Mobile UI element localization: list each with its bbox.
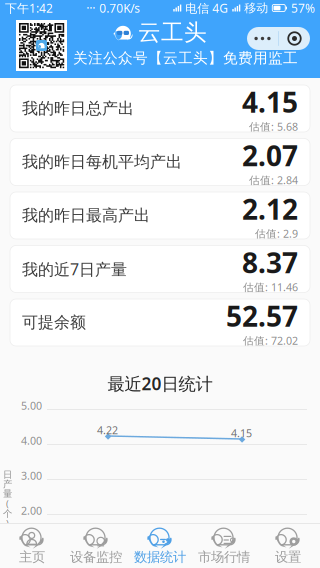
staticText: 3.00 — [21, 468, 42, 483]
staticText: 我的近7日产量 — [22, 258, 127, 280]
staticText: 可提余额 — [22, 313, 86, 332]
staticText: 数据统计 — [134, 549, 186, 565]
staticText: 4.15 — [231, 426, 252, 440]
staticText: 2.07 — [242, 137, 298, 174]
staticText: 设备监控 — [70, 549, 122, 565]
staticText: 移动 — [244, 1, 268, 15]
staticText: 估值: 5.68 — [249, 119, 298, 134]
staticText: 57% — [291, 0, 315, 16]
button[interactable]: 我的近7日产量 — [10, 245, 310, 292]
staticText: ) — [6, 517, 9, 530]
staticText: 2.12 — [242, 190, 298, 227]
button[interactable]: 更多 — [247, 27, 310, 50]
staticText: 电信 4G — [185, 0, 228, 16]
staticText: 52.57 — [226, 297, 298, 334]
button[interactable]: 设置 — [256, 524, 320, 568]
staticText: 日 — [3, 469, 12, 480]
staticText: ··· — [86, 0, 95, 16]
staticText: 最近20日统计 — [107, 372, 212, 395]
staticText: 我的昨日总产出 — [22, 99, 134, 118]
staticText: ( — [6, 497, 9, 510]
staticText: 4.00 — [21, 433, 42, 448]
staticText: 我的昨日每机平均产出 — [22, 152, 182, 172]
staticText: 估值: 2.9 — [255, 226, 298, 241]
button[interactable]: 设备监控 — [64, 524, 128, 568]
button[interactable]: 我的昨日每机平均产出 — [10, 138, 310, 185]
staticText: 关注公众号【云工头】免费用监工 — [73, 49, 298, 67]
staticText: 市场行情 — [198, 549, 250, 565]
staticText: 主页 — [19, 549, 45, 565]
button[interactable]: 市场行情 — [192, 524, 256, 568]
staticText: 估值: 2.84 — [249, 173, 298, 187]
staticText: 估值: 72.02 — [243, 333, 298, 348]
staticText: 4.15 — [242, 83, 298, 120]
staticText: 云工头 — [138, 19, 207, 46]
staticText: 0.70K/s — [99, 0, 140, 16]
button[interactable]: 可提余额 — [10, 299, 310, 346]
staticText: 个 — [3, 508, 12, 519]
staticText: 设置 — [275, 549, 301, 565]
staticText: 2.00 — [21, 503, 42, 518]
button[interactable]: 主页 — [0, 524, 64, 568]
button[interactable]: 我的昨日最高产出 — [10, 192, 310, 239]
staticText: 下午1:42 — [5, 0, 53, 16]
staticText: 5.00 — [21, 398, 42, 413]
staticText: 估值: 11.46 — [243, 280, 298, 294]
button[interactable]: 数据统计 — [128, 524, 192, 568]
staticText: 8.37 — [242, 244, 298, 281]
staticText: 我的昨日最高产出 — [22, 206, 150, 225]
button[interactable]: 我的昨日总产出 — [10, 85, 310, 132]
staticText: 4.22 — [97, 423, 118, 437]
staticText: 量 — [3, 488, 12, 499]
staticText: 产 — [3, 478, 12, 490]
